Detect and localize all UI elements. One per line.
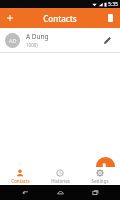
button[interactable]: Recent apps bbox=[85, 185, 105, 200]
button[interactable]: AD bbox=[0, 28, 120, 52]
button[interactable]: Histories bbox=[40, 167, 80, 185]
staticText: Contacts bbox=[43, 13, 77, 24]
staticText: 1000) bbox=[26, 42, 38, 48]
button[interactable]: Settings bbox=[80, 167, 120, 185]
staticText: A Dung bbox=[26, 32, 49, 41]
staticText: 5:35 bbox=[108, 1, 118, 8]
staticText: AD bbox=[9, 37, 17, 44]
button[interactable]: Delete bbox=[100, 8, 120, 28]
staticText: Contacts bbox=[11, 178, 30, 184]
button[interactable]: Home bbox=[50, 185, 70, 200]
button[interactable]: Back bbox=[15, 185, 35, 200]
button[interactable]: Add contact bbox=[0, 8, 20, 28]
button[interactable]: Edit contact bbox=[99, 32, 115, 48]
button[interactable]: Call bbox=[96, 157, 115, 176]
staticText: Settings bbox=[91, 178, 109, 184]
staticText: Histories bbox=[51, 178, 70, 184]
button[interactable]: Contacts bbox=[0, 167, 40, 185]
